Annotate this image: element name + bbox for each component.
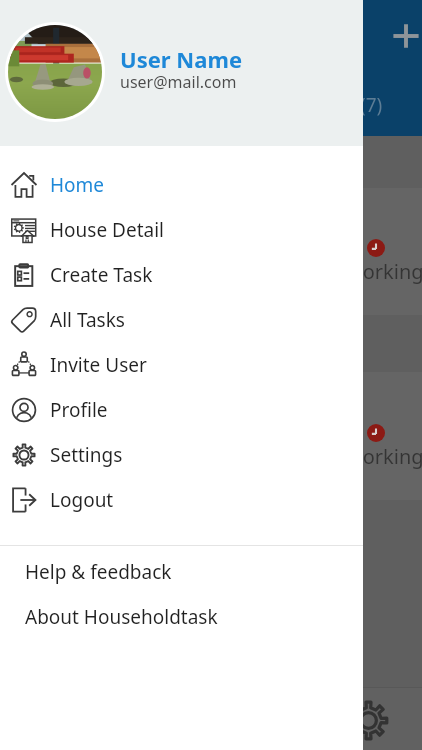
staticText: user@mail.com — [120, 71, 237, 93]
staticText: working — [347, 443, 422, 470]
button[interactable]: Home — [0, 162, 363, 207]
staticText: Profile — [50, 397, 108, 423]
staticText: Invite User — [50, 352, 147, 378]
staticText: working — [347, 258, 422, 285]
button[interactable]: working — [0, 188, 422, 315]
button[interactable]: Settings — [346, 698, 391, 743]
button[interactable]: All Tasks — [0, 297, 363, 342]
button[interactable]: Create Task — [0, 252, 363, 297]
staticText: User Name — [120, 44, 243, 74]
staticText: Help & feedback — [25, 559, 172, 585]
button[interactable]: Profile — [0, 387, 363, 432]
staticText: (7) — [360, 92, 383, 118]
button[interactable]: Invite User — [0, 342, 363, 387]
staticText: Logout — [50, 487, 114, 513]
button[interactable]: Help & feedback — [0, 549, 363, 594]
button[interactable]: About Householdtask — [0, 594, 363, 639]
button[interactable]: Logout — [0, 477, 363, 522]
staticText: Settings — [50, 442, 123, 468]
staticText: All Tasks — [50, 307, 125, 333]
staticText: About Householdtask — [25, 604, 218, 630]
staticText: Home — [50, 172, 105, 198]
button[interactable]: House Detail — [0, 207, 363, 252]
staticText: Create Task — [50, 262, 153, 288]
button[interactable]: working — [0, 372, 422, 500]
button[interactable]: Settings — [0, 432, 363, 477]
staticText: House Detail — [50, 217, 164, 243]
button[interactable]: Add task — [392, 22, 420, 50]
